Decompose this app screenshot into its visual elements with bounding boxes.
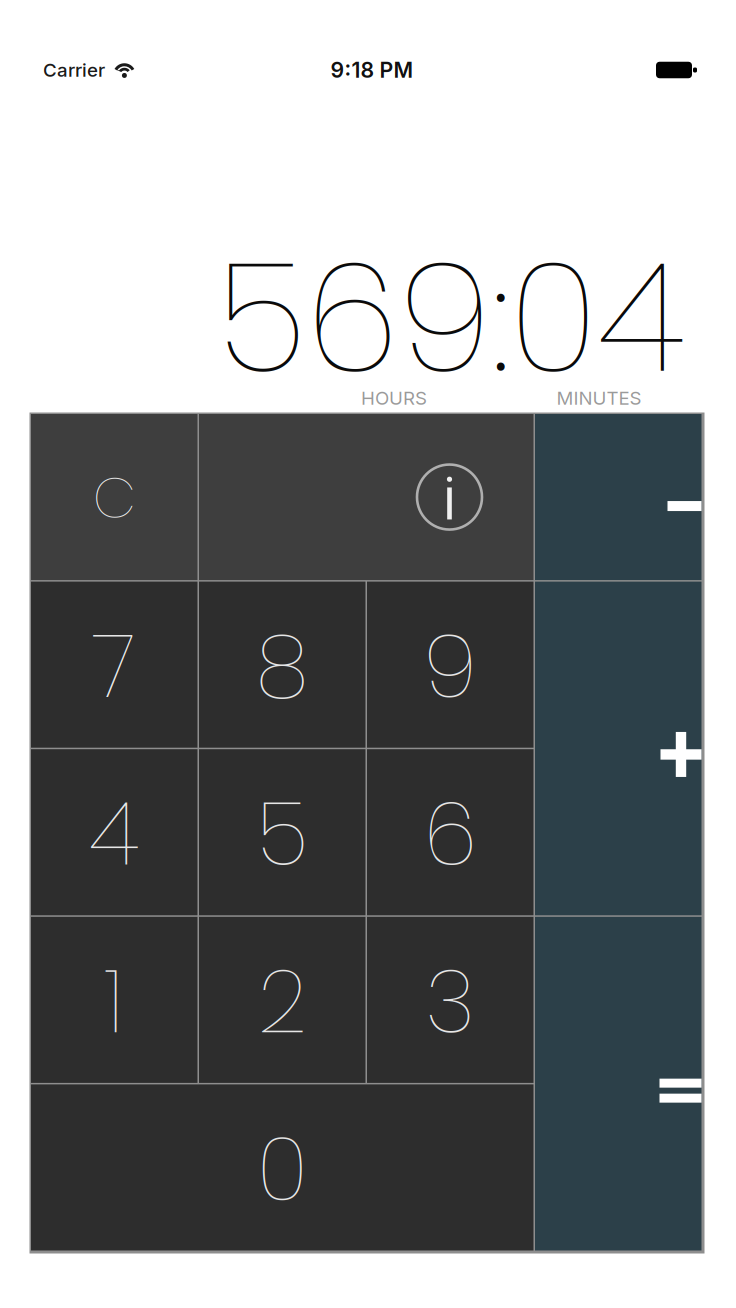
button[interactable]: 4 xyxy=(31,749,197,915)
button[interactable]: 6 xyxy=(367,749,533,915)
staticText: 569:04 xyxy=(217,212,684,423)
staticText: 9:18 PM xyxy=(330,57,413,83)
staticText: Carrier xyxy=(43,59,105,81)
staticText: 6 xyxy=(424,774,477,895)
staticText: 7 xyxy=(92,606,136,727)
button[interactable]: 5 xyxy=(199,749,365,915)
staticText: 0 xyxy=(257,1109,308,1230)
staticText: MINUTES xyxy=(556,387,641,409)
button[interactable]: Equals xyxy=(535,917,701,1250)
staticText: 8 xyxy=(256,606,309,727)
button[interactable]: 9 xyxy=(367,582,533,748)
button[interactable]: 0 xyxy=(31,1084,533,1250)
staticText: 9 xyxy=(424,606,477,727)
button[interactable]: 8 xyxy=(199,582,365,748)
button[interactable]: 1 xyxy=(31,917,197,1083)
staticText: 5 xyxy=(257,774,308,895)
staticText: 3 xyxy=(425,941,475,1062)
button[interactable]: Info xyxy=(199,414,533,580)
button[interactable]: Plus xyxy=(535,582,701,915)
staticText: HOURS xyxy=(361,387,427,409)
button[interactable]: 3 xyxy=(367,917,533,1083)
button[interactable]: Minus xyxy=(535,414,701,580)
staticText: 1 xyxy=(104,941,124,1062)
button[interactable]: C xyxy=(31,414,197,580)
staticText: C xyxy=(93,459,136,537)
staticText: 2 xyxy=(258,941,307,1062)
button[interactable]: 2 xyxy=(199,917,365,1083)
staticText: 4 xyxy=(89,774,139,895)
button[interactable]: 7 xyxy=(31,582,197,748)
